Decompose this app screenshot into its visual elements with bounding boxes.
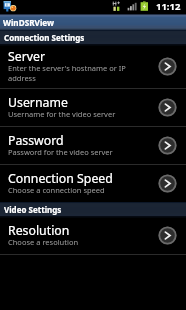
other: Open setting: [158, 174, 177, 193]
staticText: Connection Settings: [4, 32, 85, 43]
staticText: Username for the video server: [8, 109, 116, 119]
staticText: 11:12: [156, 0, 181, 13]
staticText: Enter the server's hostname or IP: [8, 63, 126, 73]
other: Open setting: [158, 98, 177, 117]
staticText: Choose a connection speed: [8, 185, 105, 195]
button[interactable]: Username: [0, 89, 186, 127]
other: Open setting: [158, 226, 177, 245]
staticText: Password: [8, 132, 64, 149]
staticText: Connection Speed: [8, 170, 113, 187]
button[interactable]: Resolution: [0, 217, 186, 255]
other: Open setting: [158, 57, 177, 76]
staticText: Password for the video server: [8, 147, 113, 157]
button[interactable]: Connection Speed: [0, 165, 186, 202]
staticText: address: [8, 73, 36, 83]
staticText: Video Settings: [4, 204, 62, 215]
button[interactable]: Password: [0, 127, 186, 165]
staticText: WinDSRView: [3, 17, 55, 28]
staticText: Choose a resolution: [8, 237, 79, 247]
staticText: Username: [8, 94, 68, 111]
staticText: Resolution: [8, 222, 70, 239]
other: Open setting: [158, 136, 177, 155]
staticText: Server: [8, 48, 46, 65]
button[interactable]: Server: [0, 45, 186, 89]
